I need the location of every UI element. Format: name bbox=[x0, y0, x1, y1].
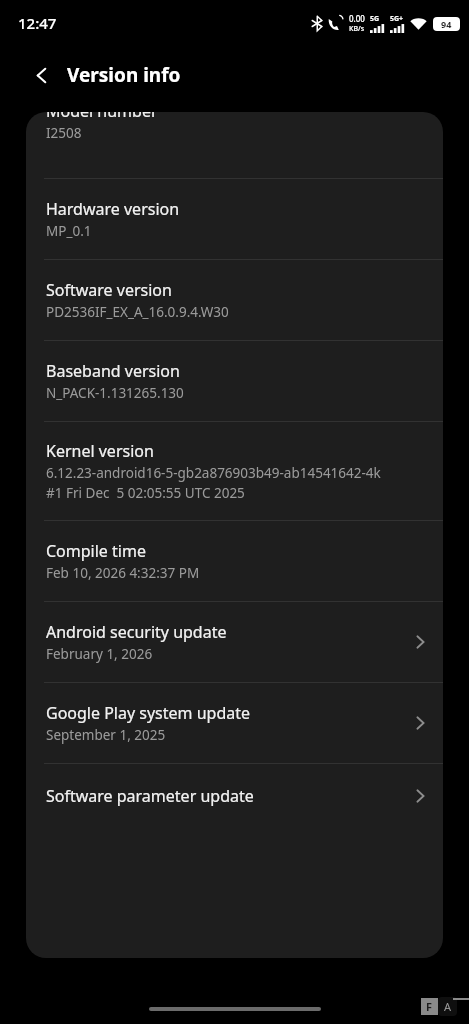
button[interactable]: Compile time bbox=[26, 521, 443, 602]
staticText: A bbox=[444, 999, 452, 1014]
button[interactable]: Back bbox=[24, 58, 58, 92]
button[interactable]: Software version bbox=[26, 260, 443, 341]
button[interactable]: Kernel version bbox=[26, 422, 443, 521]
staticText: KB/s bbox=[349, 24, 365, 34]
staticText: September 1, 2025 bbox=[46, 726, 166, 744]
staticText: PD2536IF_EX_A_16.0.9.4.W30 bbox=[46, 303, 229, 321]
button[interactable]: Model number bbox=[26, 112, 443, 179]
staticText: February 1, 2026 bbox=[46, 645, 153, 663]
staticText: Feb 10, 2026 4:32:37 PM bbox=[46, 564, 200, 582]
staticText: Hardware version bbox=[46, 198, 180, 220]
staticText: Android security update bbox=[46, 621, 227, 643]
staticText: Software version bbox=[46, 279, 172, 301]
staticText: Compile time bbox=[46, 540, 146, 562]
staticText: MP_0.1 bbox=[46, 222, 92, 240]
staticText: N_PACK-1.131265.130 bbox=[46, 384, 184, 402]
staticText: 5G+ bbox=[390, 14, 404, 24]
staticText: 0.00 bbox=[349, 13, 365, 24]
staticText: 5G bbox=[370, 14, 380, 24]
button[interactable]: Android security update bbox=[26, 602, 443, 683]
button[interactable]: Software parameter update bbox=[26, 764, 443, 828]
staticText: Kernel version bbox=[46, 440, 154, 462]
button[interactable]: Google Play system update bbox=[26, 683, 443, 764]
staticText: 6.12.23-android16-5-gb2a876903b49-ab1454… bbox=[46, 464, 381, 482]
button[interactable]: Hardware version bbox=[26, 179, 443, 260]
staticText: Version info bbox=[67, 62, 181, 88]
staticText: Software parameter update bbox=[46, 785, 254, 807]
staticText: Model number bbox=[46, 112, 158, 122]
staticText: Baseband version bbox=[46, 360, 180, 382]
button[interactable]: Baseband version bbox=[26, 341, 443, 422]
staticText: F bbox=[426, 999, 433, 1014]
staticText: 12:47 bbox=[18, 13, 57, 33]
staticText: 94 bbox=[441, 18, 452, 30]
staticText: Google Play system update bbox=[46, 702, 251, 724]
staticText: I2508 bbox=[46, 124, 82, 142]
staticText: #1 Fri Dec 5 02:05:55 UTC 2025 bbox=[46, 484, 245, 502]
